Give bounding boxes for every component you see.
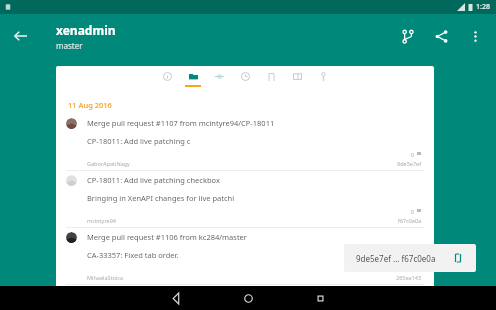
button[interactable]: Share: [424, 19, 458, 53]
button[interactable]: Recents: [308, 286, 332, 310]
button[interactable]: More options: [458, 19, 492, 53]
button[interactable]: Home: [236, 286, 260, 310]
staticText: mcintyre94: [87, 217, 116, 224]
button[interactable]: Contributors: [310, 66, 336, 92]
staticText: 1:28: [476, 2, 490, 12]
staticText: MihaelaStoica: [87, 274, 123, 281]
staticText: 9de5e7ef ... f67c0e0a: [356, 253, 436, 264]
button[interactable]: Files: [180, 66, 206, 92]
button[interactable]: Issues: [232, 66, 258, 92]
staticText: CA-33357: Fixed tab order.: [87, 250, 179, 260]
staticText: f67c0e0a: [398, 217, 422, 224]
staticText: 0: [411, 151, 415, 158]
staticText: master: [56, 40, 83, 51]
staticText: CP-18011: Add live patching checkbox: [87, 175, 220, 185]
button[interactable]: Merge pull request #1107 from mcintyre94…: [56, 114, 434, 171]
button[interactable]: Commits: [206, 66, 232, 92]
button[interactable]: Back: [164, 286, 188, 310]
button[interactable]: Branches: [390, 19, 424, 53]
button[interactable]: Swap: [452, 252, 464, 264]
staticText: Merge pull request #1107 from mcintyre94…: [87, 118, 275, 128]
button[interactable]: 9de5e7ef ... f67c0e0a: [344, 244, 476, 272]
staticText: 265ea143: [396, 274, 422, 281]
button[interactable]: Releases: [284, 66, 310, 92]
staticText: xenadmin: [56, 22, 116, 38]
staticText: 11 Aug 2016: [68, 100, 112, 110]
button[interactable]: Back: [0, 16, 40, 56]
button[interactable]: CP-18011: Add live patching checkbox: [56, 171, 434, 228]
staticText: 0: [411, 208, 415, 215]
button[interactable]: Info: [154, 66, 180, 92]
staticText: Bringing in XenAPI changes for live patc…: [87, 193, 235, 203]
staticText: CP-18011: Add live patching c: [87, 136, 191, 146]
staticText: 9de5e7ef: [397, 160, 422, 167]
staticText: Merge pull request #1106 from kc284/mast…: [87, 232, 247, 242]
button[interactable]: Merge pull request #1106 from kc284/mast…: [56, 228, 434, 285]
button[interactable]: Pull requests: [258, 66, 284, 92]
staticText: GaborApatiNagy: [87, 160, 130, 167]
